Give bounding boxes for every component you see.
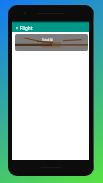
button[interactable]: Menu bbox=[15, 26, 18, 29]
button[interactable]: Total Ai bbox=[15, 34, 88, 51]
staticText: Total Ai bbox=[42, 38, 53, 42]
staticText: Flight bbox=[20, 25, 33, 31]
